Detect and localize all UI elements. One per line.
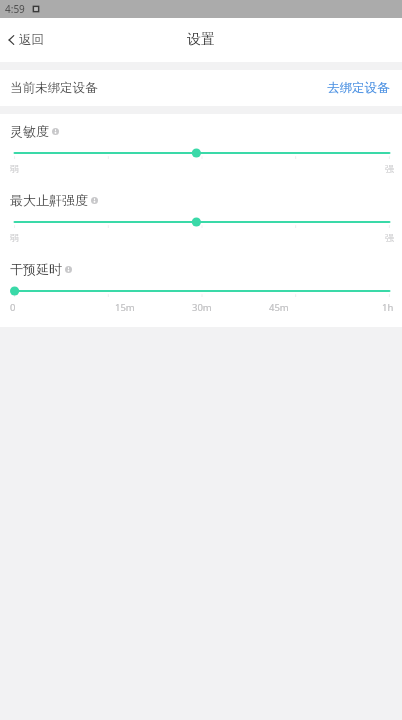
staticText: 0 <box>10 301 16 314</box>
staticText: 灵敏度 <box>10 123 49 139</box>
staticText: 45m <box>269 301 289 314</box>
button[interactable]: 灵敏度 <box>0 114 402 183</box>
staticText: 15m <box>115 301 135 314</box>
staticText: 强 <box>385 163 394 174</box>
staticText: 干预延时 <box>10 261 62 277</box>
button[interactable]: 干预延时 <box>0 252 402 323</box>
button[interactable]: 返回 <box>0 26 54 54</box>
staticText: 去绑定设备 <box>327 80 390 96</box>
staticText: 返回 <box>19 32 44 48</box>
staticText: 最大止鼾强度 <box>10 192 88 208</box>
staticText: 当前未绑定设备 <box>10 80 98 96</box>
button[interactable]: 去绑定设备 <box>325 76 392 100</box>
staticText: 设置 <box>187 31 215 49</box>
staticText: 弱 <box>10 232 19 243</box>
staticText: 强 <box>385 232 394 243</box>
button[interactable]: 最大止鼾强度 <box>0 183 402 252</box>
staticText: 4:59 <box>5 2 25 16</box>
button[interactable]: 当前未绑定设备 <box>0 70 402 106</box>
staticText: 1h <box>382 301 394 314</box>
staticText: 弱 <box>10 163 19 174</box>
staticText: 30m <box>192 301 212 314</box>
